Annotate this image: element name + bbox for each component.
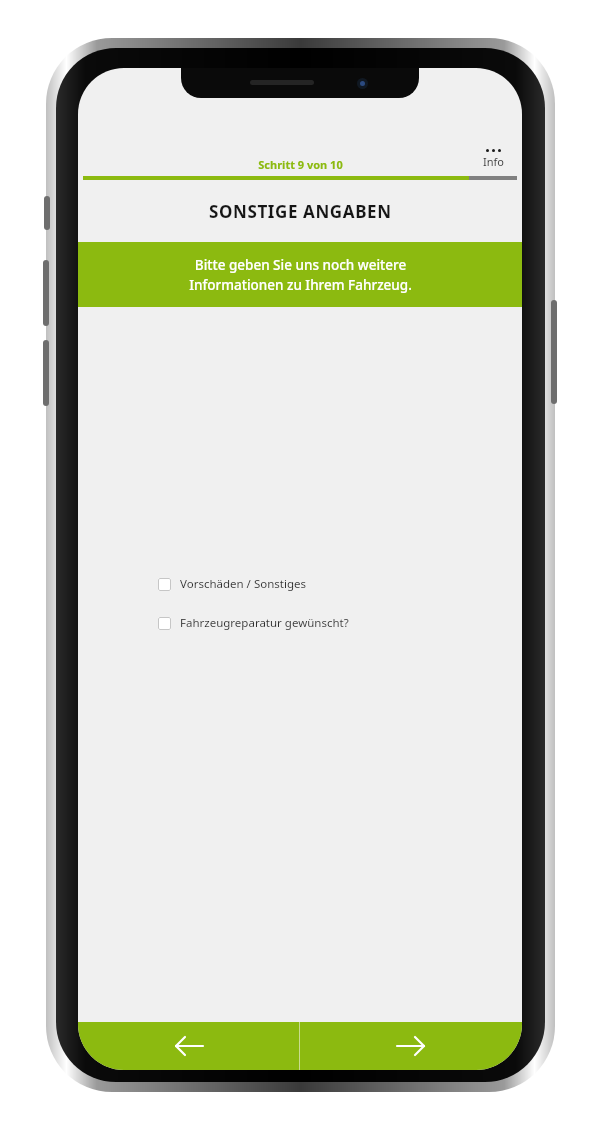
- button[interactable]: Weiter: [300, 1022, 522, 1070]
- staticText: Bitte geben Sie uns noch weitere Informa…: [189, 256, 412, 294]
- button[interactable]: Info: [477, 147, 510, 171]
- button[interactable]: Fahrzeugreparatur gewünscht?: [78, 611, 522, 635]
- button[interactable]: Zurück: [78, 1022, 299, 1070]
- staticText: Fahrzeugreparatur gewünscht?: [180, 615, 349, 631]
- staticText: SONSTIGE ANGABEN: [209, 200, 392, 223]
- button[interactable]: Vorschäden / Sonstiges: [78, 572, 522, 596]
- staticText: Vorschäden / Sonstiges: [180, 576, 306, 592]
- staticText: Schritt 9 von 10: [258, 157, 343, 172]
- staticText: Info: [483, 154, 504, 169]
